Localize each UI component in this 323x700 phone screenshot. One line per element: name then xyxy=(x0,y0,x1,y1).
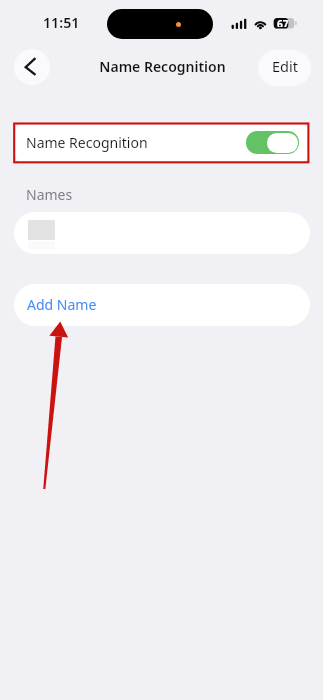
staticText: Add Name xyxy=(27,295,97,314)
staticText: Name Recognition xyxy=(99,57,226,76)
staticText: Edit xyxy=(272,56,298,76)
button[interactable]: Toggle Name Recognition xyxy=(246,131,299,154)
staticText: 11:51 xyxy=(43,13,80,32)
staticText: 67 xyxy=(277,17,289,27)
button[interactable] xyxy=(14,212,310,254)
button[interactable]: Add Name xyxy=(14,284,310,326)
staticText: Names xyxy=(26,185,73,204)
button[interactable]: Back xyxy=(14,49,50,85)
button[interactable]: Name Recognition xyxy=(14,124,310,163)
staticText: Name Recognition xyxy=(26,133,148,152)
button[interactable]: Edit xyxy=(258,50,311,86)
